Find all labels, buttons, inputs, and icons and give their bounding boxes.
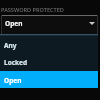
button[interactable]: Any (0, 37, 98, 54)
button[interactable]: Locked (0, 54, 98, 71)
button[interactable]: Open (0, 72, 98, 89)
staticText: Open (4, 76, 22, 85)
staticText: Locked (4, 58, 28, 67)
staticText: PASSWORD PROTECTED (1, 6, 64, 14)
staticText: Any (4, 41, 17, 50)
button[interactable]: Open (1, 15, 98, 34)
other: Open dropdown (89, 22, 95, 25)
staticText: Open (5, 19, 23, 28)
